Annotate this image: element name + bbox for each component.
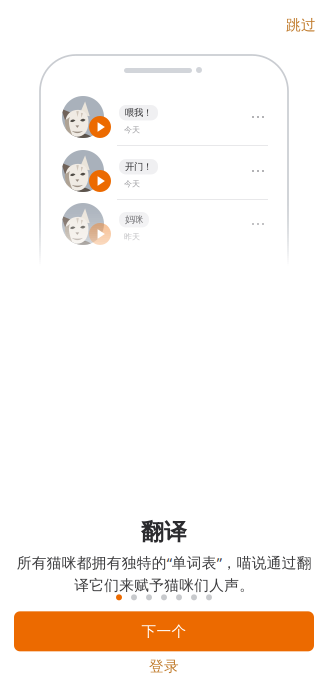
staticText: 今天 [124, 125, 140, 135]
button[interactable]: 下一个 [14, 611, 314, 651]
staticText: 今天 [124, 179, 140, 189]
staticText: 登录 [149, 657, 179, 675]
staticText: 翻译 [141, 518, 187, 546]
button[interactable]: 跳过 [278, 11, 324, 39]
staticText: 下一个 [141, 622, 186, 640]
staticText: 所有猫咪都拥有独特的“单词表”，喵说通过翻译它们来赋予猫咪们人声。 [16, 553, 311, 594]
staticText: 妈咪 [125, 214, 143, 225]
staticText: 开门！ [125, 161, 152, 172]
staticText: 昨天 [124, 232, 140, 242]
staticText: 跳过 [286, 16, 316, 34]
staticText: 喂我！ [125, 107, 152, 118]
button[interactable]: 登录 [139, 653, 189, 679]
